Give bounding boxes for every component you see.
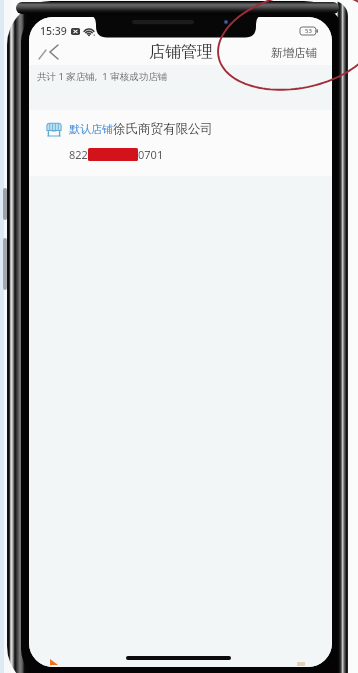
staticText: 53 [305,27,312,35]
button[interactable]: Back [29,40,63,65]
staticText: 共计 1 家店铺, 1 审核成功店铺 [37,70,168,83]
staticText: 822 [69,147,88,162]
staticText: 新增店铺 [271,46,317,59]
staticText: 徐氏商贸有限公司 [113,121,213,137]
button[interactable]: 新增店铺 [263,40,332,65]
staticText: 店铺管理 [149,42,213,62]
staticText: 0701 [138,147,164,162]
button[interactable]: 默认店铺 [29,110,332,176]
staticText: 默认店铺 [69,122,113,136]
staticText: 15:39 [40,24,67,38]
